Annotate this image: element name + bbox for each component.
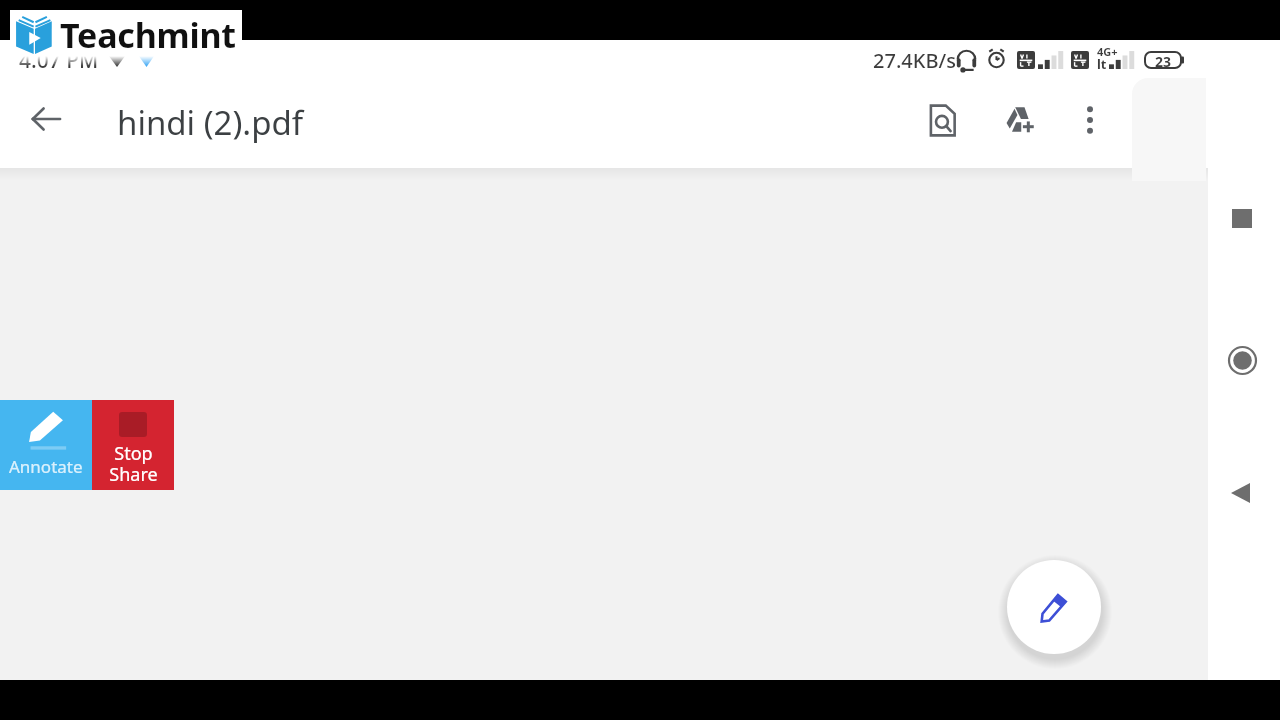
staticText: lt [1097,55,1107,73]
button[interactable]: Find in document [918,96,966,144]
staticText: Teachmint [60,12,236,58]
staticText: Annotate [9,455,83,478]
button[interactable]: Back [1218,471,1262,515]
staticText: 27.4KB/s [873,47,956,74]
button[interactable]: Annotate [0,400,92,490]
staticText: hindi (2).pdf [117,100,304,145]
staticText: Stop Share [109,441,158,486]
button[interactable]: Stop Share [92,400,174,490]
button[interactable]: Back [22,95,70,143]
staticText: 4.07 PM [19,46,99,75]
button[interactable]: Home [1220,338,1264,382]
button[interactable]: Save to Drive [996,96,1044,144]
button[interactable]: Annotate [1007,560,1101,654]
staticText: 4G+ [1097,44,1118,59]
button[interactable]: Recent apps [1220,196,1264,240]
button[interactable]: More options [1066,96,1114,144]
staticText: 23 [1155,52,1172,71]
